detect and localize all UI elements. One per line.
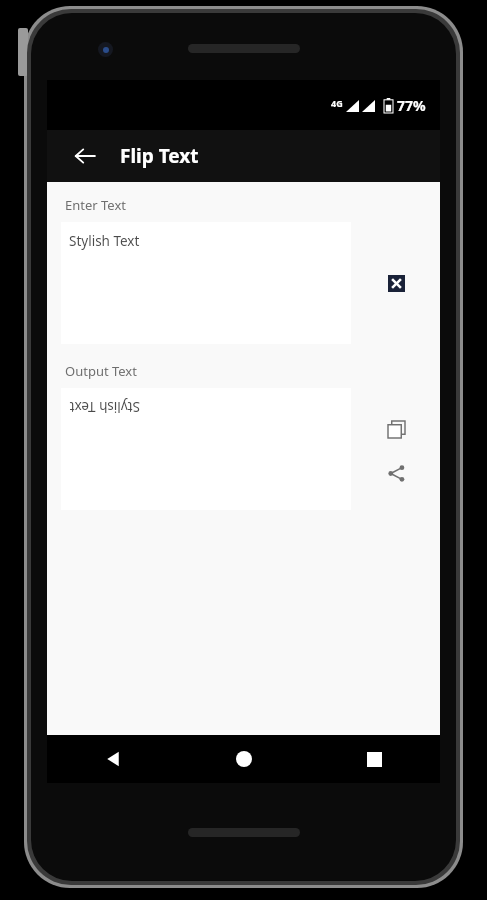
staticText: Flip Text — [120, 143, 199, 169]
staticText: Stylish Text — [69, 232, 140, 250]
button[interactable]: Back — [67, 138, 103, 174]
staticText: 4G — [331, 97, 343, 109]
button[interactable]: Home — [178, 735, 309, 783]
button[interactable]: Share — [379, 456, 413, 490]
button[interactable]: Back — [47, 735, 178, 783]
staticText: Output Text — [65, 362, 137, 380]
staticText: 77% — [397, 96, 426, 115]
button[interactable]: Stylish Text — [61, 388, 351, 510]
staticText: Enter Text — [65, 196, 126, 214]
button[interactable]: Recent apps — [309, 735, 440, 783]
button[interactable]: Copy — [379, 412, 413, 446]
staticText: Stylish Text — [69, 398, 140, 416]
button[interactable]: Stylish Text — [61, 222, 351, 344]
button[interactable]: Clear — [379, 266, 413, 300]
